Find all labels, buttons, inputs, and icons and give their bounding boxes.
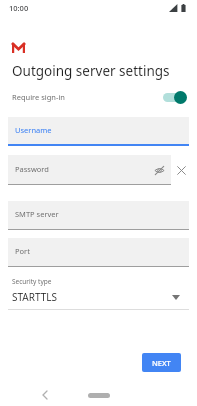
staticText: SMTP server — [15, 209, 59, 219]
button[interactable]: Home — [82, 386, 116, 404]
button[interactable]: Require sign-in — [0, 86, 197, 108]
button[interactable]: Security type — [0, 276, 197, 310]
button[interactable]: SMTP server — [8, 201, 189, 230]
button[interactable]: Back — [36, 384, 54, 406]
staticText: 10:00 — [9, 3, 29, 13]
staticText: Require sign-in — [12, 92, 65, 102]
button[interactable]: Port — [8, 238, 189, 267]
staticText: STARTTLS — [12, 290, 58, 304]
button[interactable]: Clear — [176, 165, 187, 176]
button[interactable]: Require sign-in toggle — [161, 90, 187, 104]
staticText: Security type — [12, 277, 52, 286]
staticText: Username — [15, 125, 52, 135]
staticText: Outgoing server settings — [12, 62, 170, 80]
button[interactable]: Username — [8, 117, 189, 146]
staticText: Password — [15, 164, 49, 174]
staticText: NEXT — [152, 358, 171, 368]
button[interactable]: Show password — [154, 165, 165, 176]
staticText: Port — [15, 246, 30, 256]
button[interactable]: Password — [8, 155, 171, 185]
button[interactable]: NEXT — [142, 353, 181, 372]
